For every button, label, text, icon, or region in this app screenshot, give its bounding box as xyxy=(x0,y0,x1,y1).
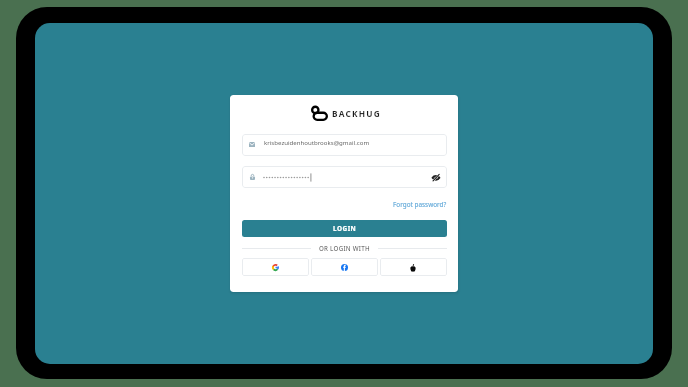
button[interactable]: Hide password xyxy=(430,171,442,183)
button[interactable]: krisbezuidenhoutbrooks@gmail.com xyxy=(242,134,447,156)
button[interactable]: Sign in with Google xyxy=(242,258,309,276)
staticText: LOGIN xyxy=(333,224,357,233)
button[interactable]: Sign in with Facebook xyxy=(311,258,378,276)
staticText: OR LOGIN WITH xyxy=(319,244,370,252)
staticText: Forgot password? xyxy=(393,200,447,209)
button[interactable]: Hide password xyxy=(242,166,447,188)
staticText: BACKHUG xyxy=(332,108,381,119)
button[interactable]: LOGIN xyxy=(242,220,447,237)
button[interactable]: Sign in with Apple xyxy=(380,258,447,276)
staticText: krisbezuidenhoutbrooks@gmail.com xyxy=(264,138,370,146)
button[interactable]: Forgot password? xyxy=(380,199,447,209)
